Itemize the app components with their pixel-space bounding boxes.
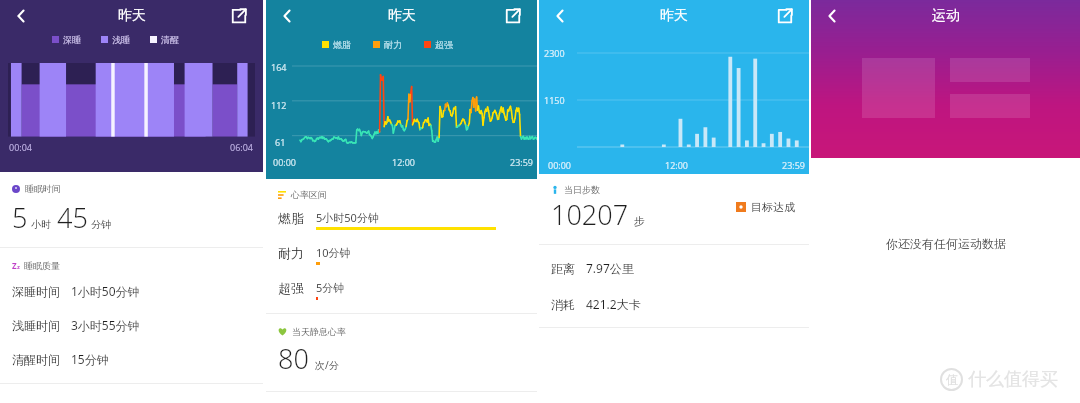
staticText: 昨天	[118, 7, 146, 25]
staticText: 深睡时间	[12, 284, 60, 299]
button[interactable]: Back	[816, 0, 848, 31]
staticText: 5小时50分钟	[316, 210, 379, 225]
staticText: 12:00	[392, 156, 416, 168]
staticText: 清醒	[161, 34, 179, 45]
button[interactable]: 睡眠时间	[0, 172, 263, 247]
staticText: 深睡	[63, 34, 81, 45]
staticText: 112	[271, 99, 287, 111]
staticText: 61	[275, 136, 286, 148]
staticText: 10207	[551, 196, 629, 233]
staticText: 45	[57, 199, 88, 236]
staticText: 消耗	[551, 297, 575, 312]
staticText: 06:04	[230, 141, 254, 153]
staticText: 164	[271, 61, 287, 73]
staticText: 1小时50分钟	[71, 283, 140, 299]
button[interactable]: Back	[544, 0, 576, 31]
button[interactable]: Share	[223, 0, 255, 31]
staticText: 超强	[435, 39, 453, 50]
staticText: 2300	[544, 47, 565, 59]
button[interactable]: Share	[769, 0, 801, 31]
staticText: 浅睡时间	[12, 318, 60, 333]
staticText: 睡眠质量	[24, 260, 60, 271]
staticText: 7.97公里	[586, 260, 634, 276]
button[interactable]: 距离	[539, 245, 809, 327]
staticText: 距离	[551, 261, 575, 276]
button[interactable]: 当天静息心率	[266, 314, 537, 391]
staticText: 值	[946, 372, 958, 387]
staticText: 12:00	[665, 159, 689, 171]
staticText: 清醒时间	[12, 352, 60, 367]
staticText: 昨天	[388, 7, 416, 25]
staticText: 浅睡	[112, 34, 130, 45]
staticText: 超强	[278, 280, 310, 296]
staticText: 23:59	[782, 159, 806, 171]
staticText: 1150	[544, 94, 565, 106]
staticText: 步	[634, 214, 645, 228]
staticText: 昨天	[660, 7, 688, 25]
staticText: 00:04	[9, 141, 33, 153]
staticText: 当天静息心率	[292, 326, 346, 337]
staticText: 421.2大卡	[586, 296, 641, 312]
button[interactable]: 目标达成	[736, 200, 795, 214]
button[interactable]: 当日步数	[539, 174, 809, 244]
staticText: 燃脂	[278, 210, 310, 226]
staticText: 运动	[932, 7, 960, 25]
staticText: 你还没有任何运动数据	[886, 236, 1006, 251]
staticText: 5	[12, 199, 28, 236]
button[interactable]: Back	[271, 0, 303, 31]
staticText: 15分钟	[71, 351, 109, 367]
staticText: 燃脂	[333, 39, 351, 50]
staticText: 目标达成	[751, 200, 795, 214]
staticText: 小时	[31, 218, 51, 231]
staticText: 当日步数	[564, 184, 600, 195]
staticText: 次/分	[315, 358, 339, 372]
staticText: 00:00	[273, 156, 297, 168]
staticText: 耐力	[278, 245, 310, 261]
staticText: 10分钟	[316, 245, 351, 260]
staticText: z	[17, 263, 20, 271]
staticText: 睡眠时间	[25, 183, 61, 194]
staticText: 心率区间	[291, 189, 327, 200]
staticText: 00:00	[548, 159, 572, 171]
staticText: 分钟	[91, 218, 111, 231]
button[interactable]: Back	[5, 0, 37, 31]
staticText: 什么值得买	[968, 368, 1058, 391]
button[interactable]: Share	[497, 0, 529, 31]
button[interactable]: Z	[0, 248, 263, 383]
staticText: 5分钟	[316, 280, 345, 295]
staticText: 耐力	[384, 39, 402, 50]
button[interactable]: 心率区间	[266, 179, 537, 313]
staticText: 3小时55分钟	[71, 317, 140, 333]
staticText: 23:59	[510, 156, 534, 168]
staticText: Z	[12, 260, 17, 271]
staticText: 80	[278, 340, 309, 377]
